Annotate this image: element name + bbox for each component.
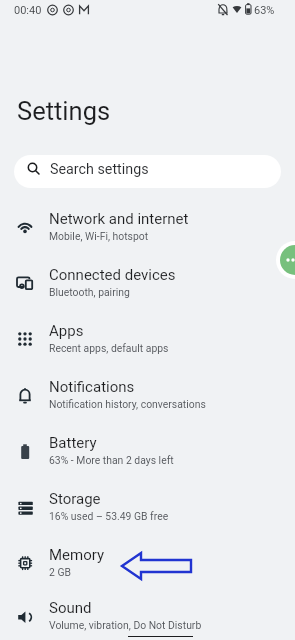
staticText: 00:40 (14, 4, 42, 17)
staticText: 16% used – 53.49 GB free (49, 510, 169, 522)
button[interactable]: Sound (0, 591, 295, 640)
staticText: Storage (49, 490, 101, 508)
button[interactable]: Memory (0, 535, 295, 591)
button[interactable]: Apps (0, 311, 295, 367)
staticText: Battery (49, 434, 97, 452)
staticText: 63% (254, 4, 275, 17)
button[interactable]: Search settings (14, 155, 281, 188)
staticText: Volume, vibration, Do Not Disturb (49, 619, 202, 631)
staticText: Notifications (49, 378, 135, 396)
button[interactable]: Network and internet (0, 199, 295, 255)
staticText: Notification history, conversations (49, 398, 206, 410)
staticText: Sound (49, 599, 92, 617)
staticText: Connected devices (49, 266, 176, 284)
staticText: Search settings (50, 161, 149, 178)
staticText: Memory (49, 546, 105, 564)
staticText: 63% - More than 2 days left (49, 454, 174, 466)
staticText: Mobile, Wi-Fi, hotspot (49, 230, 149, 242)
button[interactable]: Battery (0, 423, 295, 479)
staticText: 2 GB (49, 566, 71, 578)
staticText: Apps (49, 322, 84, 340)
staticText: Network and internet (49, 210, 189, 228)
staticText: Bluetooth, pairing (49, 286, 130, 298)
staticText: Recent apps, default apps (49, 342, 169, 354)
button[interactable]: Notifications (0, 367, 295, 423)
button[interactable] (276, 241, 295, 279)
staticText: Settings (17, 96, 111, 126)
button[interactable]: Connected devices (0, 255, 295, 311)
button[interactable]: Storage (0, 479, 295, 535)
